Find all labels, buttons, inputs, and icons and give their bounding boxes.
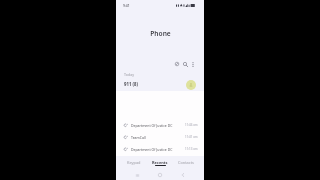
- button[interactable]: Search: [181, 60, 189, 68]
- staticText: Today: [124, 72, 134, 77]
- staticText: 11:41 am: [185, 135, 198, 139]
- button[interactable]: Contacts: [173, 157, 199, 170]
- button[interactable]: Recents: [147, 157, 173, 170]
- button[interactable]: Keypad: [121, 157, 147, 170]
- staticText: Phone: [150, 29, 171, 38]
- staticText: Keypad: [127, 160, 141, 165]
- staticText: TeamCall: [131, 135, 146, 140]
- staticText: Recents: [152, 160, 168, 165]
- button[interactable]: Department Of Justice DC: [116, 119, 204, 131]
- staticText: 9:41: [123, 3, 130, 8]
- button[interactable]: Block numbers: [173, 60, 181, 68]
- button[interactable]: More options: [189, 60, 197, 68]
- staticText: Department Of Justice DC: [131, 147, 173, 152]
- button[interactable]: TeamCall: [116, 131, 204, 143]
- button[interactable]: Department Of Justice DC: [116, 143, 204, 155]
- button[interactable]: Recent apps: [126, 169, 148, 180]
- button[interactable]: Home: [148, 169, 171, 180]
- button[interactable]: Back: [171, 169, 194, 180]
- staticText: Contacts: [178, 160, 194, 165]
- staticText: 911 (8): [124, 81, 138, 87]
- staticText: 11:44 am: [185, 123, 198, 127]
- staticText: 11:13 am: [185, 147, 198, 151]
- staticText: Department Of Justice DC: [131, 123, 173, 128]
- button[interactable]: Contact photo: [186, 80, 196, 90]
